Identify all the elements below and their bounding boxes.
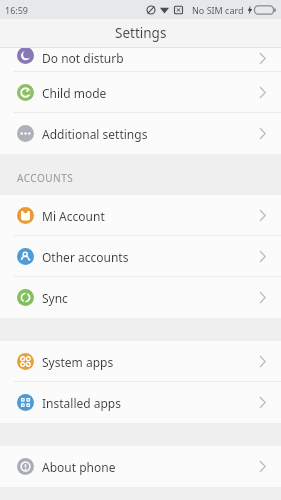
staticText: Mi Account	[42, 208, 105, 224]
button[interactable]: Additional settings	[0, 113, 281, 154]
staticText: Additional settings	[42, 126, 148, 142]
staticText: About phone	[42, 459, 116, 475]
staticText: Settings	[115, 24, 167, 42]
staticText: Sync	[42, 290, 68, 306]
staticText: Do not disturb	[42, 50, 124, 66]
staticText: Other accounts	[42, 249, 129, 265]
staticText: System apps	[42, 354, 114, 370]
button[interactable]: Sync	[0, 277, 281, 318]
button[interactable]: Installed apps	[0, 382, 281, 423]
button[interactable]: Child mode	[0, 72, 281, 113]
staticText: ACCOUNTS	[17, 171, 74, 185]
staticText: No SIM card	[192, 4, 244, 16]
staticText: Child mode	[42, 85, 107, 101]
button[interactable]: Do not disturb	[0, 48, 281, 72]
button[interactable]: System apps	[0, 341, 281, 382]
button[interactable]: Mi Account	[0, 195, 281, 236]
staticText: Installed apps	[42, 395, 121, 411]
button[interactable]: Other accounts	[0, 236, 281, 277]
staticText: 16:59	[5, 4, 29, 16]
button[interactable]: About phone	[0, 446, 281, 487]
